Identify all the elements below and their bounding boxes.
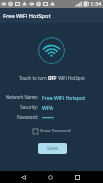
staticText: WPA bbox=[42, 104, 54, 111]
staticText: 11:34 bbox=[87, 0, 102, 8]
button[interactable]: Home bbox=[44, 171, 57, 183]
staticText: Save bbox=[47, 145, 58, 152]
button[interactable]: Show Password bbox=[33, 128, 71, 134]
button[interactable]: Back bbox=[17, 171, 30, 183]
staticText: Network Name: bbox=[5, 94, 38, 100]
staticText: Free WiFi Hotspot bbox=[42, 94, 86, 101]
staticText: Security: bbox=[20, 104, 38, 110]
staticText: Show Password bbox=[40, 128, 71, 134]
button[interactable]: Save bbox=[38, 143, 67, 154]
staticText: OFF bbox=[48, 75, 57, 81]
staticText: WiFi HotSpot bbox=[57, 75, 85, 81]
button[interactable]: Turn off WiFi HotSpot bbox=[38, 37, 65, 64]
staticText: Free WiFi HotSpot bbox=[3, 12, 51, 20]
button[interactable]: Recent apps bbox=[71, 171, 84, 183]
staticText: Touch to turn bbox=[19, 75, 48, 81]
staticText: •••••• bbox=[42, 114, 54, 121]
staticText: Password: bbox=[16, 114, 38, 120]
